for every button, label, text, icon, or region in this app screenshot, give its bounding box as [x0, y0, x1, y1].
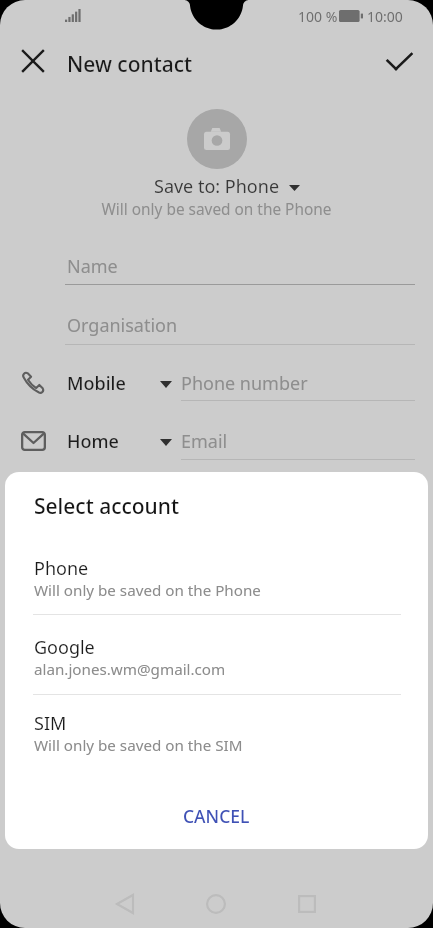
staticText: Phone number: [181, 371, 308, 396]
button[interactable]: Save: [376, 38, 422, 84]
button[interactable]: Save to: Phone: [0, 174, 433, 198]
button[interactable]: SIM: [5, 711, 428, 757]
button[interactable]: CANCEL: [168, 799, 264, 833]
button[interactable]: Phone: [5, 556, 428, 602]
staticText: 10:00: [367, 7, 403, 26]
staticText: Select account: [34, 492, 179, 521]
staticText: Home: [67, 429, 119, 454]
button[interactable]: Recents: [283, 880, 331, 928]
staticText: Save to: Phone: [154, 174, 280, 198]
staticText: Will only be saved on the Phone: [0, 199, 433, 220]
staticText: 100 %: [298, 7, 338, 26]
button[interactable]: Back: [101, 880, 149, 928]
button[interactable]: Close: [10, 38, 56, 84]
staticText: Email: [181, 429, 228, 454]
button[interactable]: Google: [5, 635, 428, 681]
staticText: Organisation: [67, 313, 178, 338]
staticText: CANCEL: [183, 804, 250, 828]
staticText: Will only be saved on the Phone: [34, 580, 261, 601]
staticText: Google: [34, 635, 95, 660]
staticText: Name: [67, 254, 118, 279]
staticText: Mobile: [67, 371, 126, 396]
staticText: alan.jones.wm@gmail.com: [34, 659, 226, 680]
button[interactable]: Add photo: [187, 109, 247, 169]
staticText: Phone: [34, 556, 89, 581]
staticText: New contact: [67, 50, 193, 79]
button[interactable]: Home: [192, 880, 240, 928]
staticText: Will only be saved on the SIM: [34, 735, 243, 756]
staticText: SIM: [34, 711, 67, 736]
